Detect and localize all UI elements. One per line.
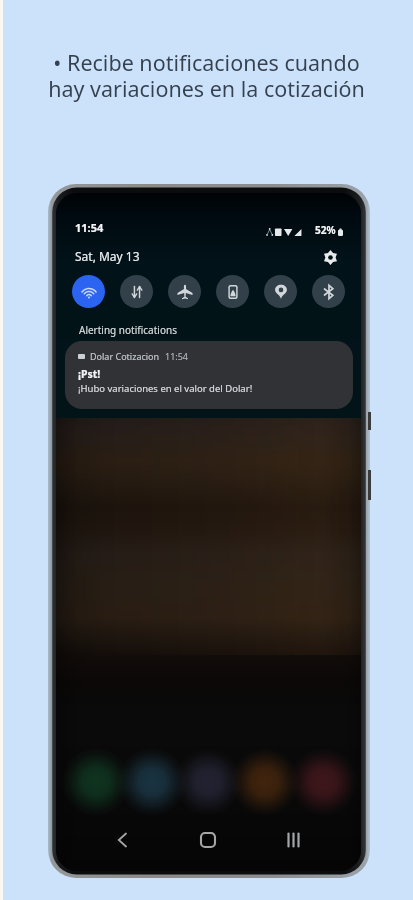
staticText: ¡Pst! bbox=[78, 367, 101, 381]
button[interactable]: Back bbox=[106, 830, 138, 862]
staticText: 11:54 bbox=[165, 350, 189, 362]
button[interactable]: Airplane mode bbox=[168, 275, 201, 308]
button[interactable]: Settings bbox=[323, 250, 338, 265]
staticText: Dolar Cotizacion bbox=[90, 350, 160, 362]
staticText: • Recibe notificaciones cuando hay varia… bbox=[48, 48, 365, 104]
staticText: 52% bbox=[315, 223, 336, 237]
button[interactable]: Location bbox=[264, 275, 297, 308]
staticText: 11:54 bbox=[75, 220, 104, 235]
button[interactable]: Wi-Fi bbox=[72, 275, 105, 308]
button[interactable]: Recents bbox=[277, 830, 309, 862]
staticText: ¡Hubo variaciones en el valor del Dolar! bbox=[78, 382, 253, 395]
button[interactable]: Auto rotate bbox=[216, 275, 249, 308]
button[interactable]: Dolar Cotizacion bbox=[65, 341, 353, 409]
button[interactable]: Home bbox=[192, 830, 224, 862]
button[interactable]: Bluetooth bbox=[312, 275, 345, 308]
staticText: Sat, May 13 bbox=[75, 248, 140, 264]
staticText: Alerting notifications bbox=[79, 323, 177, 337]
button[interactable]: Mobile data bbox=[120, 275, 153, 308]
